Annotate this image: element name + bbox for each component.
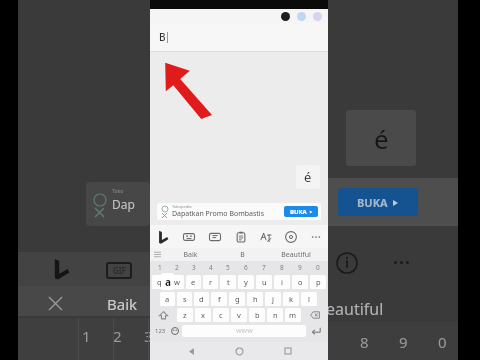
button[interactable]: 0 <box>310 262 326 273</box>
button[interactable]: Backspace <box>302 307 327 323</box>
button[interactable]: 1 <box>152 262 167 273</box>
button[interactable]: Clipboard <box>228 225 253 248</box>
button[interactable]: a <box>160 292 175 306</box>
staticText: n <box>273 310 278 320</box>
button[interactable]: B <box>216 248 269 261</box>
staticText: B <box>240 250 245 260</box>
staticText: z <box>183 310 187 320</box>
staticText: a <box>165 275 171 289</box>
button[interactable]: More options <box>303 225 328 248</box>
button[interactable]: Translate <box>253 225 278 248</box>
button[interactable]: t <box>220 275 236 289</box>
staticText: b <box>255 310 260 320</box>
button[interactable]: f <box>211 292 227 306</box>
staticText: 0 <box>316 263 320 272</box>
button[interactable]: l <box>301 292 317 306</box>
staticText: g <box>235 294 240 304</box>
button[interactable]: b <box>249 308 265 322</box>
staticText: y <box>244 277 248 287</box>
staticText: a <box>165 294 170 304</box>
button[interactable]: Home <box>231 343 247 359</box>
staticText: Dapatkan Promo Bombastis <box>172 209 265 219</box>
staticText: s <box>183 294 187 304</box>
staticText: f <box>218 294 221 304</box>
staticText: 0 <box>438 332 447 352</box>
button[interactable]: g <box>229 292 245 306</box>
button[interactable]: d <box>194 292 209 306</box>
button[interactable]: B <box>150 23 328 51</box>
staticText: h <box>253 294 258 304</box>
staticText: m <box>289 310 297 320</box>
staticText: 1 <box>158 263 162 272</box>
button[interactable]: 9 <box>292 262 308 273</box>
staticText: BUKA <box>290 208 307 216</box>
button[interactable]: 3 <box>186 262 201 273</box>
button[interactable]: Suggestions menu <box>150 248 164 261</box>
button[interactable]: n <box>267 308 283 322</box>
button[interactable]: u <box>256 275 272 289</box>
button[interactable]: Tokopedia <box>157 203 321 220</box>
staticText: w <box>174 277 180 287</box>
button[interactable]: WWW <box>182 325 306 337</box>
button[interactable]: q <box>152 275 167 289</box>
staticText: l <box>308 294 310 304</box>
button[interactable]: Bing search <box>150 225 176 248</box>
staticText: k <box>289 294 294 304</box>
button[interactable]: 8 <box>274 262 290 273</box>
button[interactable]: h <box>247 292 263 306</box>
button[interactable]: Shift <box>151 307 176 323</box>
staticText: é <box>374 121 389 156</box>
button[interactable]: 6 <box>238 262 254 273</box>
staticText: v <box>237 310 241 320</box>
button[interactable]: s <box>177 292 192 306</box>
staticText: 5 <box>226 263 230 272</box>
staticText: 7 <box>262 263 266 272</box>
staticText: Toko <box>112 188 124 195</box>
button[interactable]: Emoji <box>168 323 182 339</box>
button[interactable]: z <box>177 308 193 322</box>
button[interactable]: 4 <box>203 262 218 273</box>
button[interactable]: 2 <box>169 262 184 273</box>
staticText: 2 <box>175 263 179 272</box>
staticText: GIF <box>113 265 126 276</box>
button[interactable]: c <box>213 308 229 322</box>
button[interactable]: BUKA <box>284 206 318 217</box>
staticText: 123 <box>155 327 166 335</box>
button[interactable]: Stickers <box>176 225 202 248</box>
button[interactable]: i <box>274 275 290 289</box>
button[interactable]: Enter <box>306 323 326 339</box>
button[interactable]: Beautiful <box>269 248 322 261</box>
staticText: WWW <box>236 327 253 335</box>
button[interactable]: Recents <box>280 343 296 359</box>
button[interactable]: e <box>186 275 201 289</box>
button[interactable]: m <box>285 308 301 322</box>
button[interactable]: 7 <box>256 262 272 273</box>
staticText: r <box>209 277 213 287</box>
staticText: 1 <box>82 326 91 346</box>
button[interactable]: v <box>231 308 247 322</box>
button[interactable]: Settings <box>278 225 303 248</box>
staticText: Dap <box>112 196 135 212</box>
staticText: Beautiful <box>281 250 311 260</box>
staticText: x <box>201 310 205 320</box>
button[interactable]: w <box>169 275 184 289</box>
button[interactable]: Back <box>183 343 199 359</box>
button[interactable]: GIF <box>202 225 228 248</box>
button[interactable]: y <box>238 275 254 289</box>
staticText: q <box>157 277 162 287</box>
button[interactable]: j <box>265 292 281 306</box>
button[interactable]: 5 <box>220 262 236 273</box>
button[interactable]: r <box>203 275 218 289</box>
button[interactable]: 123 <box>152 323 168 339</box>
button[interactable]: o <box>292 275 308 289</box>
staticText: c <box>219 310 223 320</box>
button[interactable]: x <box>195 308 211 322</box>
staticText: 8 <box>280 263 284 272</box>
button[interactable]: k <box>283 292 299 306</box>
button[interactable]: Baik <box>164 248 216 261</box>
staticText: B <box>159 30 166 44</box>
staticText: BUKA <box>357 195 388 210</box>
button[interactable]: p <box>310 275 326 289</box>
staticText: j <box>272 294 274 304</box>
staticText: Baik <box>107 294 138 314</box>
